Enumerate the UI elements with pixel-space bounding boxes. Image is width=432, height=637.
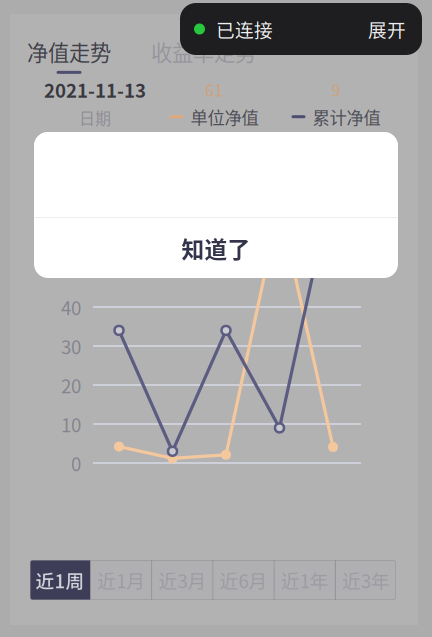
staticText: 0	[71, 449, 81, 476]
staticText: 收益率走势	[151, 36, 256, 67]
staticText: 近6月	[220, 566, 268, 593]
button[interactable]: 近3月	[152, 560, 212, 600]
staticText: 近1月	[97, 566, 145, 593]
button[interactable]: 知道了	[34, 218, 398, 278]
button[interactable]: 展开	[368, 15, 406, 42]
staticText: 单位净值	[190, 104, 258, 129]
staticText: 累计净值	[312, 104, 380, 129]
button[interactable]: 收益率走势	[151, 36, 256, 74]
button[interactable]: 近1年	[275, 560, 335, 600]
staticText: 61	[205, 78, 223, 101]
button[interactable]: 近1月	[91, 560, 151, 600]
staticText: 40	[61, 293, 81, 320]
button[interactable]: 近6月	[213, 560, 274, 600]
staticText: 20	[61, 371, 81, 398]
button[interactable]: 近1周	[30, 560, 90, 600]
staticText: 30	[61, 332, 81, 359]
staticText: 知道了	[181, 232, 250, 264]
staticText: 净值走势	[27, 36, 111, 67]
staticText: 近1年	[281, 566, 329, 593]
button[interactable]: 净值走势	[27, 36, 111, 74]
staticText: 近3年	[342, 566, 390, 593]
staticText: 日期	[79, 106, 111, 129]
staticText: 已连接	[216, 15, 273, 42]
staticText: 展开	[368, 15, 406, 42]
staticText: 9	[331, 78, 340, 101]
staticText: 2021-11-13	[44, 76, 146, 103]
button[interactable]: 近3年	[336, 560, 396, 600]
staticText: 10	[61, 410, 81, 437]
staticText: 近1周	[35, 566, 84, 593]
staticText: 近3月	[158, 566, 206, 593]
